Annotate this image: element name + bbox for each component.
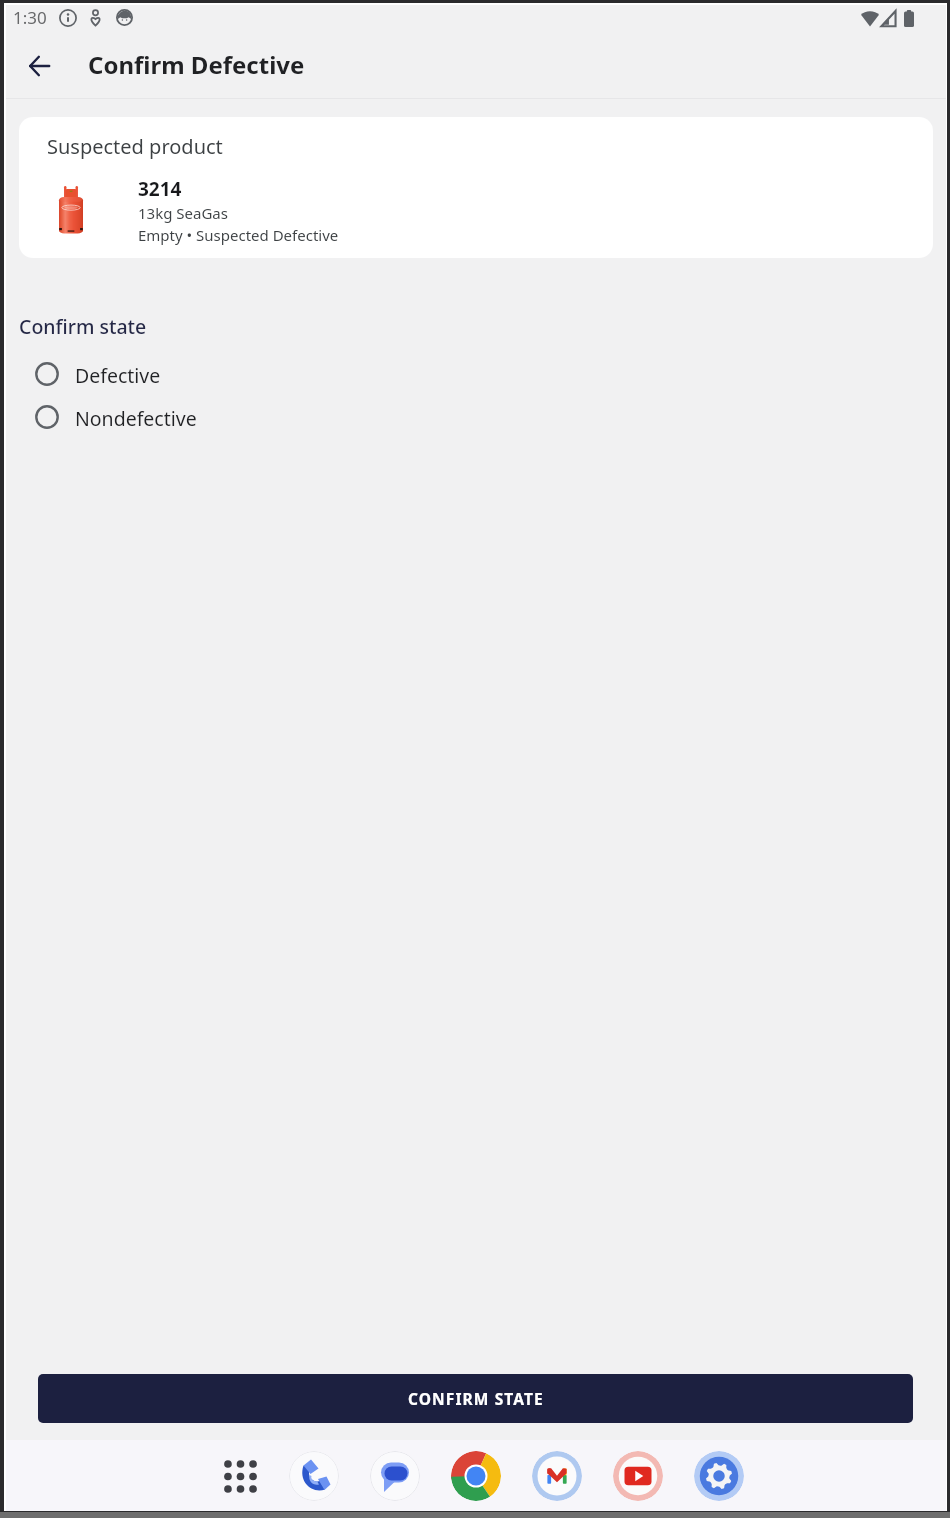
button[interactable]: Messages (370, 1451, 420, 1501)
button[interactable]: Gmail (532, 1451, 582, 1501)
staticText: Confirm Defective (88, 48, 305, 81)
button[interactable]: CONFIRM STATE (38, 1374, 913, 1423)
staticText: Suspected product (47, 133, 223, 160)
button[interactable]: Defective (6, 362, 946, 386)
staticText: Nondefective (75, 405, 197, 429)
button[interactable]: Suspected product (19, 117, 933, 258)
button[interactable]: Back (15, 43, 63, 91)
button[interactable]: All apps (208, 1451, 258, 1501)
staticText: 3214 (138, 176, 182, 202)
button[interactable]: Nondefective (6, 405, 946, 429)
staticText: 1:30 (13, 6, 47, 29)
staticText: Empty • Suspected Defective (138, 225, 339, 245)
button[interactable]: Phone (289, 1451, 339, 1501)
staticText: CONFIRM STATE (408, 1388, 544, 1409)
button[interactable]: Chrome (451, 1451, 501, 1501)
staticText: Confirm state (19, 313, 147, 340)
button[interactable]: YouTube (613, 1451, 663, 1501)
staticText: 13kg SeaGas (138, 203, 228, 223)
button[interactable]: Settings (694, 1451, 744, 1501)
staticText: Defective (75, 362, 161, 386)
